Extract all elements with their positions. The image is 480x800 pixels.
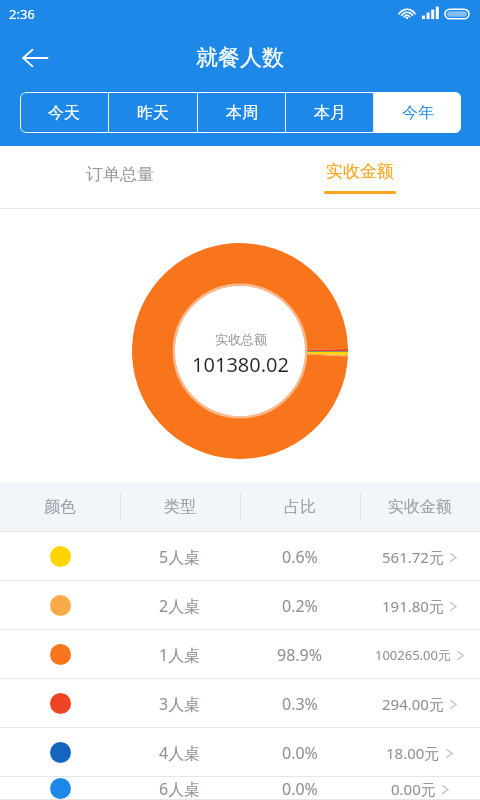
staticText: 类型: [164, 497, 196, 517]
button[interactable]: 实收金额: [240, 146, 480, 209]
staticText: 0.0%: [282, 778, 318, 800]
button[interactable]: 1人桌: [0, 630, 480, 679]
button[interactable]: 2人桌: [0, 581, 480, 630]
button[interactable]: Back: [14, 37, 56, 79]
staticText: 100265.00元: [375, 646, 451, 664]
staticText: 今年: [402, 103, 434, 123]
staticText: 今天: [48, 103, 80, 123]
staticText: 0.3%: [282, 693, 318, 715]
staticText: 颜色: [44, 497, 76, 517]
staticText: 0.0%: [282, 742, 318, 764]
staticText: 占比: [284, 497, 316, 517]
button[interactable]: 订单总量: [0, 146, 240, 209]
button[interactable]: 本月: [286, 92, 373, 133]
button[interactable]: 4人桌: [0, 728, 480, 777]
staticText: 订单总量: [86, 164, 154, 185]
staticText: 2人桌: [159, 595, 201, 617]
staticText: 本周: [226, 103, 258, 123]
staticText: 101380.02: [192, 351, 289, 378]
staticText: 本月: [314, 103, 346, 123]
staticText: 实收金额: [388, 497, 452, 517]
staticText: 5人桌: [159, 546, 201, 568]
button[interactable]: 今年: [374, 92, 461, 133]
button[interactable]: 5人桌: [0, 532, 480, 581]
staticText: 0.6%: [282, 546, 318, 568]
staticText: 3人桌: [159, 693, 201, 715]
staticText: 就餐人数: [196, 44, 284, 72]
button[interactable]: 今天: [20, 92, 108, 133]
button[interactable]: 昨天: [109, 92, 197, 133]
staticText: 0.2%: [282, 595, 318, 617]
button[interactable]: 6人桌: [0, 777, 480, 800]
staticText: 191.80元: [382, 596, 444, 616]
button[interactable]: 3人桌: [0, 679, 480, 728]
staticText: 18.00元: [386, 743, 440, 763]
staticText: 昨天: [137, 103, 169, 123]
staticText: 实收总额: [215, 331, 267, 347]
staticText: 98.9%: [277, 644, 323, 666]
staticText: 实收金额: [326, 161, 394, 182]
staticText: 294.00元: [382, 694, 444, 714]
staticText: 4人桌: [159, 742, 201, 764]
button[interactable]: 本周: [198, 92, 285, 133]
staticText: 1人桌: [159, 644, 201, 666]
staticText: 561.72元: [382, 547, 444, 567]
staticText: 6人桌: [159, 778, 201, 800]
staticText: 2:36: [9, 5, 35, 23]
staticText: 0.00元: [391, 779, 436, 799]
